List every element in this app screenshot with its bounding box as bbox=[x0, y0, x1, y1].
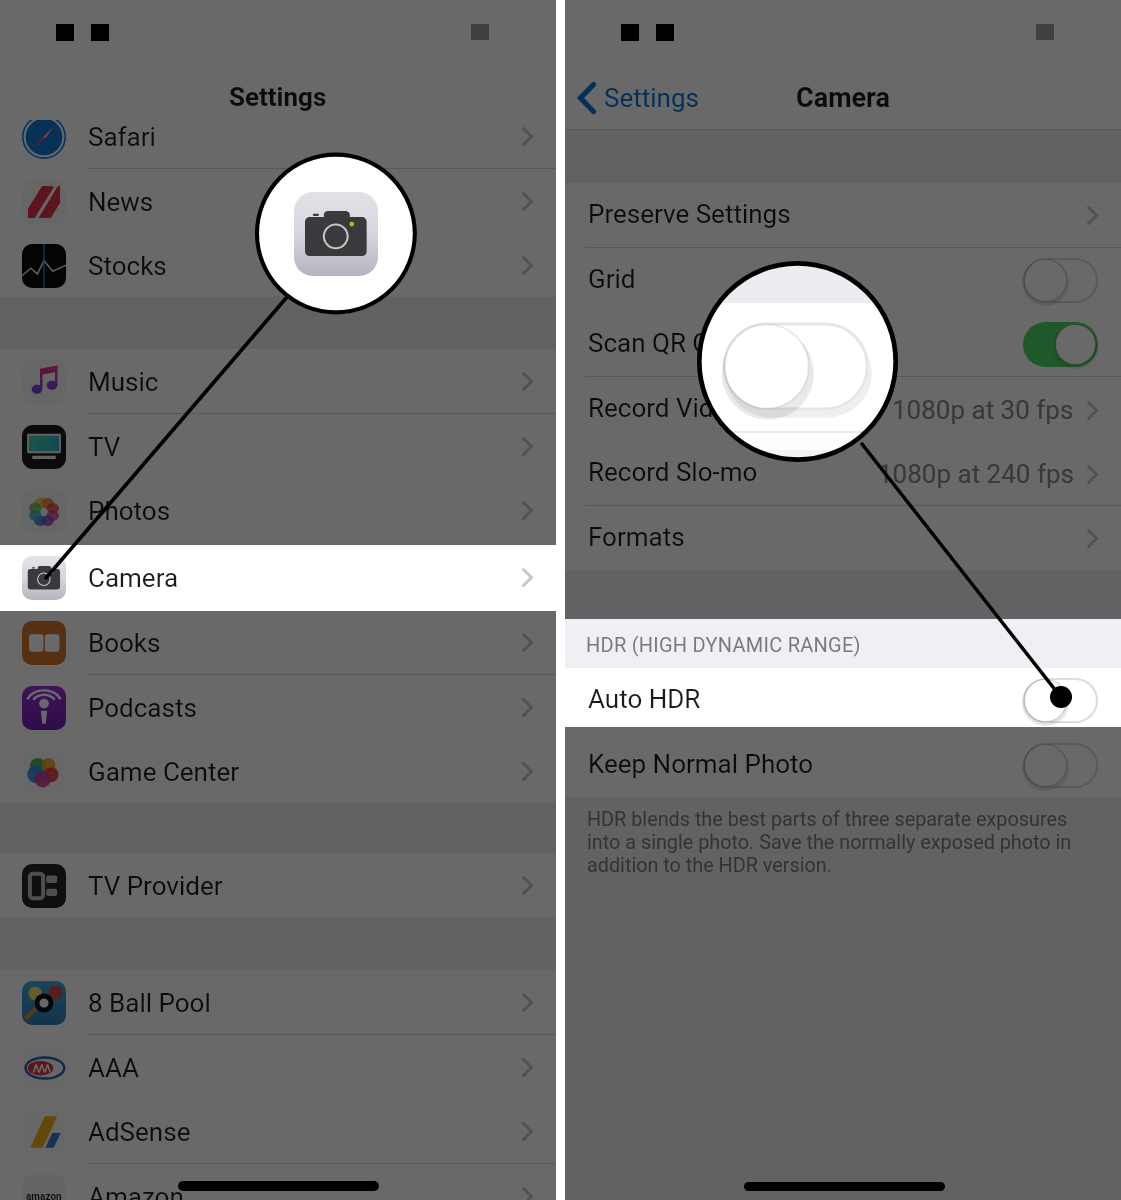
button[interactable]: Music bbox=[0, 349, 556, 414]
staticText: Auto HDR bbox=[588, 684, 701, 714]
staticText: Books bbox=[88, 628, 161, 658]
button[interactable]: Record Slo-mo bbox=[565, 441, 1121, 506]
staticText: Settings bbox=[229, 82, 327, 112]
button[interactable]: Settings bbox=[578, 66, 699, 130]
staticText: News bbox=[88, 187, 154, 217]
button[interactable]: Grid bbox=[565, 248, 1121, 313]
staticText: Formats bbox=[588, 522, 685, 552]
staticText: Amazon bbox=[88, 1182, 184, 1200]
button[interactable]: Photos bbox=[0, 478, 556, 543]
staticText: Grid bbox=[588, 264, 636, 294]
button[interactable]: Record Video bbox=[565, 377, 1121, 442]
button[interactable]: AAA bbox=[0, 1035, 556, 1100]
button[interactable]: Switch on bbox=[1023, 322, 1098, 367]
button[interactable]: Camera bbox=[0, 545, 556, 610]
staticText: Stocks bbox=[88, 251, 167, 281]
staticText: 1080p at 240 fps bbox=[878, 459, 1074, 489]
button[interactable]: Game Center bbox=[0, 739, 556, 804]
button[interactable]: Switch off bbox=[1023, 743, 1098, 788]
button[interactable]: Stocks bbox=[0, 233, 556, 298]
staticText: AAA bbox=[88, 1053, 139, 1083]
staticText: AdSense bbox=[88, 1117, 191, 1147]
staticText: 1080p at 30 fps bbox=[892, 395, 1074, 425]
button[interactable]: Keep Normal Photo bbox=[565, 733, 1121, 798]
staticText: HDR blends the best parts of three separ… bbox=[587, 808, 1072, 877]
button[interactable]: Podcasts bbox=[0, 675, 556, 740]
staticText: 8 Ball Pool bbox=[88, 988, 211, 1018]
staticText: HDR (HIGH DYNAMIC RANGE) bbox=[586, 633, 861, 656]
staticText: Game Center bbox=[88, 757, 240, 787]
staticText: Scan QR Codes bbox=[588, 328, 766, 358]
button[interactable]: Switch off bbox=[1023, 258, 1098, 303]
button[interactable]: amazon bbox=[0, 1164, 556, 1200]
staticText: Settings bbox=[604, 83, 699, 113]
staticText: Record Video bbox=[588, 393, 743, 423]
button[interactable]: TV bbox=[0, 414, 556, 479]
staticText: Podcasts bbox=[88, 693, 197, 723]
button[interactable]: Safari bbox=[0, 120, 556, 169]
staticText: Safari bbox=[88, 122, 156, 152]
button[interactable]: Auto HDR bbox=[565, 668, 1121, 733]
button[interactable]: 8 Ball Pool bbox=[0, 970, 556, 1035]
staticText: amazon bbox=[26, 1191, 62, 1200]
button[interactable]: AdSense bbox=[0, 1099, 556, 1164]
staticText: Music bbox=[88, 367, 159, 397]
button[interactable]: Formats bbox=[565, 506, 1121, 571]
button[interactable]: TV Provider bbox=[0, 853, 556, 918]
staticText: Preserve Settings bbox=[588, 199, 791, 229]
staticText: TV Provider bbox=[88, 871, 223, 901]
button[interactable]: Preserve Settings bbox=[565, 183, 1121, 248]
staticText: Camera bbox=[796, 82, 891, 114]
button[interactable]: Scan QR Codes bbox=[565, 312, 1121, 377]
button[interactable]: Switch off bbox=[1023, 678, 1098, 723]
staticText: Camera bbox=[88, 563, 179, 593]
staticText: Keep Normal Photo bbox=[588, 749, 814, 779]
button[interactable]: News bbox=[0, 169, 556, 234]
button[interactable]: Books bbox=[0, 610, 556, 675]
staticText: TV bbox=[88, 432, 121, 462]
staticText: Record Slo-mo bbox=[588, 457, 758, 487]
staticText: Photos bbox=[88, 496, 171, 526]
